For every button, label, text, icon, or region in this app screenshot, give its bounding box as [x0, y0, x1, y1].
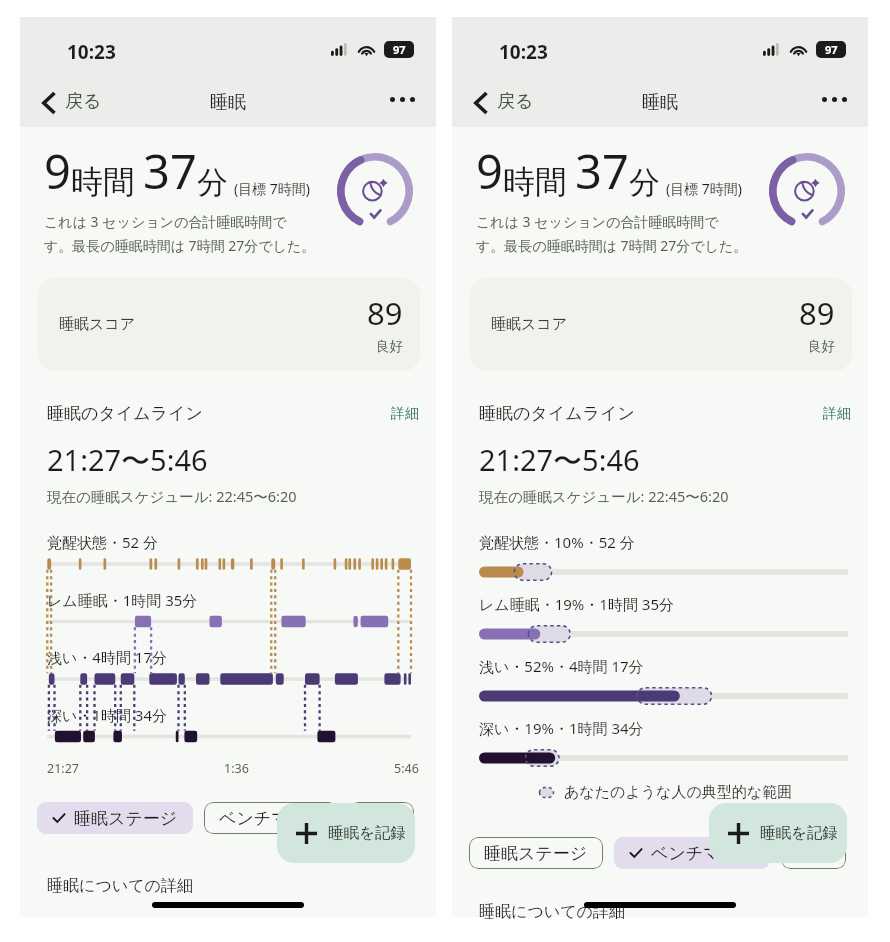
staticText: 睡眠スコア [59, 315, 136, 334]
button[interactable]: More options [822, 97, 847, 102]
staticText: 睡眠を記録 [328, 823, 406, 843]
staticText: 良好 [808, 338, 835, 355]
button[interactable]: 詳細 [823, 405, 851, 423]
button[interactable]: 睡眠ステージ [37, 802, 193, 834]
staticText: 良好 [376, 338, 403, 355]
staticText: 1:36 [224, 760, 249, 777]
staticText: ベンチマーク [651, 843, 755, 864]
staticText: 睡眠 [642, 91, 678, 114]
staticText: 現在の睡眠スケジュール: 22:45〜6:20 [479, 486, 729, 506]
staticText: 5:46 [394, 760, 419, 777]
staticText: 10:23 [67, 39, 116, 65]
staticText: 戻る [65, 90, 102, 113]
staticText: これは 3 セッションの合計睡眠時間で [44, 212, 287, 231]
staticText: 睡眠スコア [491, 315, 568, 334]
staticText: 睡眠についての詳細 [47, 876, 193, 896]
staticText: 覚醒状態・52 分 [47, 532, 159, 552]
button[interactable]: ベンチマーク [614, 837, 770, 869]
staticText: 21:27〜5:46 [47, 440, 208, 480]
staticText: 覚醒状態・10%・52 分 [479, 532, 635, 552]
staticText: 21:27 [47, 760, 79, 777]
staticText: (目標 7時間) [234, 179, 311, 198]
staticText: レム睡眠・1時間 35分 [47, 590, 198, 610]
staticText: 浅い・52%・4時間 17分 [479, 656, 644, 676]
staticText: あなたのような人の典型的な範囲 [564, 783, 793, 802]
staticText: 月の [796, 843, 831, 864]
staticText: す。最長の睡眠時間は 7時間 27分でした。 [44, 236, 316, 255]
button[interactable]: 月の [349, 802, 414, 834]
button[interactable]: ベンチマーク [204, 802, 338, 834]
button[interactable]: 戻る [42, 91, 102, 114]
staticText: 睡眠のタイムライン [47, 403, 391, 424]
button[interactable]: 詳細 [391, 405, 419, 423]
staticText: 深い・19%・1時間 34分 [479, 718, 644, 738]
staticText: す。最長の睡眠時間は 7時間 27分でした。 [476, 236, 748, 255]
button[interactable]: 睡眠スコア [38, 278, 420, 371]
staticText: 分 [197, 163, 228, 202]
staticText: 97 [393, 42, 406, 57]
staticText: 37 [143, 139, 197, 203]
staticText: 睡眠のタイムライン [479, 403, 823, 424]
staticText: 浅い・4時間 17分 [47, 647, 167, 667]
staticText: ベンチマーク [219, 808, 323, 829]
button[interactable]: 睡眠ステージ [469, 837, 603, 869]
staticText: 時間 [71, 162, 135, 202]
staticText: レム睡眠・19%・1時間 35分 [479, 594, 674, 614]
button[interactable]: More options [390, 97, 415, 102]
staticText: 睡眠を記録 [760, 823, 838, 843]
staticText: 21:27〜5:46 [479, 440, 640, 480]
staticText: 9 [476, 139, 503, 203]
staticText: 89 [799, 292, 835, 334]
staticText: 10:23 [499, 39, 548, 65]
staticText: 97 [825, 42, 838, 57]
staticText: 現在の睡眠スケジュール: 22:45〜6:20 [47, 486, 297, 506]
staticText: 睡眠についての詳細 [479, 902, 625, 922]
staticText: 37 [575, 139, 629, 203]
staticText: (目標 7時間) [666, 179, 743, 198]
button[interactable]: 睡眠を記録 [709, 803, 847, 863]
button[interactable]: 睡眠スコア [470, 278, 852, 371]
button[interactable]: 睡眠を記録 [277, 803, 415, 863]
staticText: 睡眠ステージ [74, 808, 178, 829]
staticText: 分 [629, 163, 660, 202]
button[interactable]: 戻る [474, 91, 534, 114]
staticText: 月の [364, 808, 399, 829]
staticText: 9 [44, 139, 71, 203]
staticText: 睡眠ステージ [484, 843, 588, 864]
staticText: 深い・1時間 34分 [47, 705, 167, 725]
button[interactable]: 月の [781, 837, 846, 869]
staticText: 時間 [503, 162, 567, 202]
staticText: 戻る [497, 90, 534, 113]
staticText: これは 3 セッションの合計睡眠時間で [476, 212, 719, 231]
staticText: 睡眠 [210, 91, 246, 114]
staticText: 89 [367, 292, 403, 334]
